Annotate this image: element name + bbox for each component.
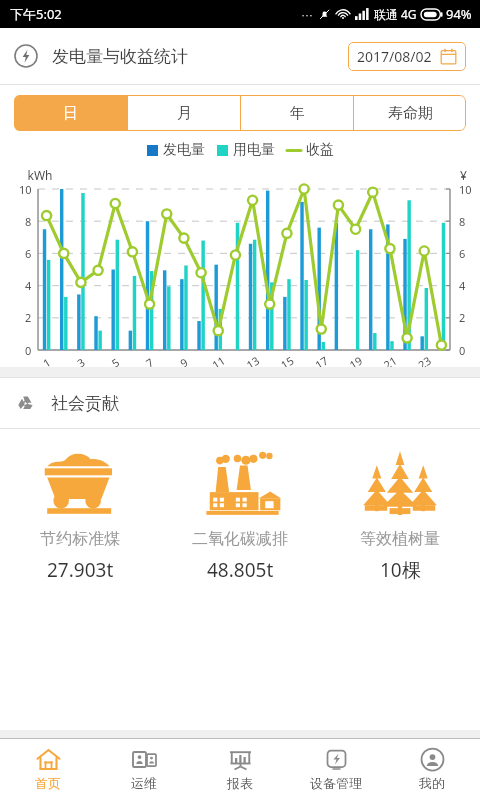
staticText: 首页 — [35, 775, 61, 791]
button[interactable]: 年 — [241, 95, 353, 131]
staticText: 二氧化碳减排 — [192, 529, 288, 549]
staticText: 用电量 — [233, 141, 275, 159]
button[interactable]: 等效植树量 — [320, 445, 480, 583]
button[interactable]: 2017/08/02 — [348, 42, 466, 71]
button[interactable]: 日 — [14, 95, 127, 131]
button[interactable]: 月 — [128, 95, 240, 131]
staticText: 发电量与收益统计 — [52, 46, 188, 67]
staticText: 寿命期 — [388, 104, 433, 123]
staticText: 4G — [401, 6, 417, 22]
staticText: 联通 — [374, 7, 398, 22]
staticText: 报表 — [227, 775, 253, 791]
staticText: 节约标准煤 — [40, 529, 120, 549]
staticText: 下午5:02 — [10, 5, 62, 23]
staticText: 48.805t — [207, 557, 274, 583]
staticText: 94% — [446, 5, 472, 23]
button[interactable]: 节约标准煤 — [0, 445, 160, 583]
button[interactable]: 首页 — [0, 739, 96, 800]
staticText: 年 — [290, 104, 305, 123]
button[interactable]: 我的 — [384, 739, 480, 800]
staticText: 2017/08/02 — [357, 47, 432, 66]
staticText: 设备管理 — [310, 775, 362, 791]
button[interactable]: 报表 — [192, 739, 288, 800]
button[interactable]: 设备管理 — [288, 739, 384, 800]
staticText: 我的 — [419, 775, 445, 791]
button[interactable]: 寿命期 — [354, 95, 466, 131]
staticText: 月 — [177, 104, 192, 123]
staticText: 运维 — [131, 775, 157, 791]
staticText: 等效植树量 — [360, 529, 440, 549]
button[interactable]: 运维 — [96, 739, 192, 800]
staticText: 10棵 — [380, 557, 421, 583]
staticText: 发电量 — [163, 141, 205, 159]
staticText: 社会贡献 — [51, 393, 119, 414]
staticText: 日 — [63, 104, 78, 123]
button[interactable]: 二氧化碳减排 — [160, 445, 320, 583]
staticText: 收益 — [306, 141, 334, 159]
staticText: 27.903t — [47, 557, 114, 583]
